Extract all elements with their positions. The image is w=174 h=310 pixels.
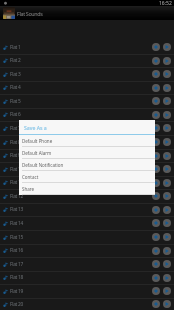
button[interactable]: Play [163,43,171,51]
staticText: Flat 17 [10,261,23,268]
button[interactable]: Play [163,124,171,132]
staticText: Flat 8 [10,139,21,146]
button[interactable]: Play [163,219,171,227]
staticText: Share [22,186,35,192]
button[interactable]: Default Phone [19,135,155,147]
button[interactable]: Play [163,192,171,200]
button[interactable]: Flat 17 [0,257,174,271]
button[interactable]: Flat 7 [0,121,174,135]
button[interactable]: Flat 16 [0,244,174,257]
button[interactable]: Flat 6 [0,108,174,121]
button[interactable]: Save [152,247,160,255]
button[interactable]: Flat 15 [0,230,174,244]
staticText: Flat 2 [10,57,21,64]
button[interactable]: Flat 11 [0,176,174,189]
button[interactable]: Flat 8 [0,135,174,149]
button[interactable]: Default Notification [19,159,155,171]
button[interactable]: Play [163,287,171,295]
button[interactable]: Save [152,57,160,65]
button[interactable]: Play [163,206,171,214]
button[interactable]: Play [163,84,171,92]
button[interactable]: Save [152,84,160,92]
staticText: Flat 5 [10,98,21,105]
button[interactable]: Save [152,124,160,132]
button[interactable]: Play [163,274,171,282]
staticText: Flat 13 [10,206,23,213]
button[interactable]: Save [152,287,160,295]
button[interactable]: Save [152,206,160,214]
button[interactable]: Flat 10 [0,162,174,176]
button[interactable]: Save [152,179,160,187]
staticText: Flat Sounds [17,10,43,17]
button[interactable]: Flat 3 [0,67,174,81]
button[interactable]: Flat 4 [0,81,174,94]
button[interactable]: Save [152,138,160,146]
button[interactable]: Flat 14 [0,216,174,230]
button[interactable]: Flat 18 [0,271,174,284]
staticText: Flat 16 [10,247,23,254]
button[interactable]: Flat 9 [0,149,174,162]
staticText: Flat 20 [10,301,23,308]
button[interactable]: Flat 5 [0,94,174,108]
button[interactable]: Contact [19,171,155,183]
staticText: Flat 19 [10,288,23,295]
button[interactable]: Flat 2 [0,54,174,67]
button[interactable]: Save [152,111,160,119]
button[interactable]: Flat 19 [0,284,174,298]
button[interactable]: Save [152,219,160,227]
staticText: 16:52 [159,0,172,6]
button[interactable]: Play [163,57,171,65]
staticText: Flat 14 [10,220,23,227]
button[interactable]: Save [152,192,160,200]
staticText: Default Alarm [22,150,52,156]
button[interactable]: Play [163,179,171,187]
button[interactable]: Save [152,300,160,308]
button[interactable]: Save [152,43,160,51]
button[interactable]: Play [163,97,171,105]
button[interactable]: Flat 1 [0,40,174,54]
button[interactable]: Play [163,165,171,173]
staticText: Flat 1 [10,44,21,51]
button[interactable]: Share [19,183,155,195]
button[interactable]: Play [163,247,171,255]
button[interactable]: Play [163,300,171,308]
staticText: Flat 12 [10,193,23,200]
staticText: Flat 10 [10,166,23,173]
button[interactable]: Play [163,138,171,146]
button[interactable]: Save [152,165,160,173]
button[interactable]: Play [163,233,171,241]
staticText: Flat 7 [10,125,21,132]
button[interactable]: Play [163,152,171,160]
staticText: Flat 6 [10,111,21,118]
button[interactable]: Play [163,260,171,268]
button[interactable]: Save [152,152,160,160]
button[interactable]: Save [152,97,160,105]
staticText: Flat 3 [10,71,21,78]
button[interactable]: Play [163,111,171,119]
staticText: Flat 9 [10,152,21,159]
staticText: Contact [22,174,39,180]
button[interactable]: Flat 13 [0,203,174,216]
button[interactable]: Save [152,274,160,282]
staticText: Flat 15 [10,234,23,241]
staticText: Flat 4 [10,84,21,91]
button[interactable]: Save [152,233,160,241]
staticText: Flat 11 [10,179,23,186]
staticText: Default Phone [22,138,53,144]
staticText: Save As a [24,124,47,131]
staticText: Flat 18 [10,274,23,281]
button[interactable]: Save [152,260,160,268]
button[interactable]: Flat 12 [0,189,174,203]
button[interactable]: Play [163,70,171,78]
button[interactable]: Flat 20 [0,298,174,310]
button[interactable]: Default Alarm [19,147,155,159]
staticText: Default Notification [22,162,64,168]
button[interactable]: Save [152,70,160,78]
